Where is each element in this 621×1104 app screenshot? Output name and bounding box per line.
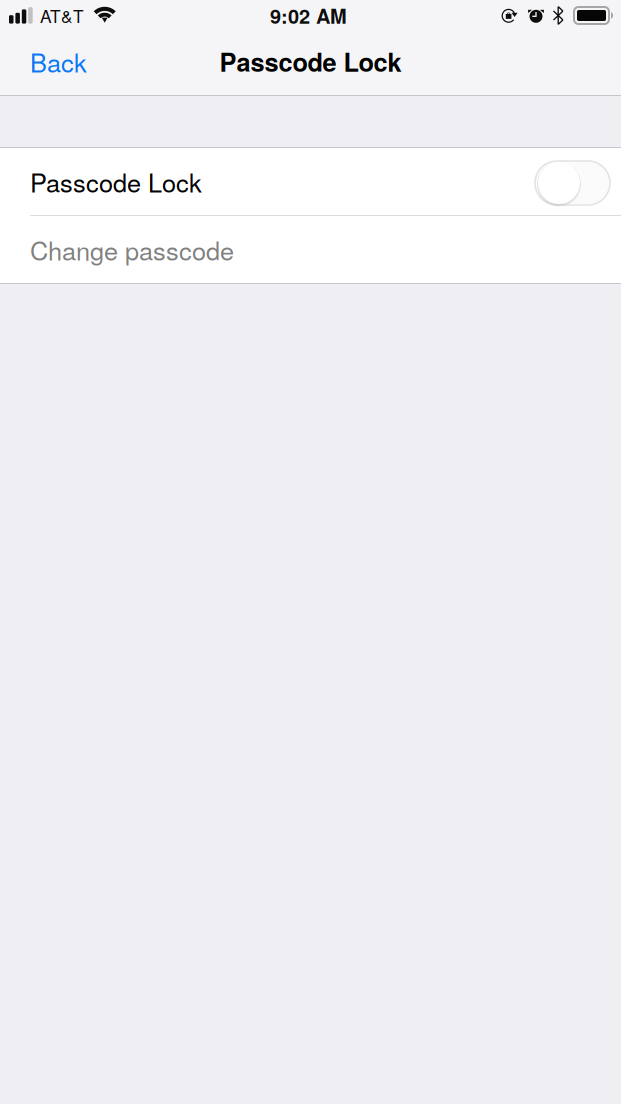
button[interactable]: Passcode Lock (0, 148, 621, 215)
staticText: Change passcode (30, 231, 234, 268)
staticText: 9:02 AM (270, 1, 347, 30)
staticText: Passcode Lock (219, 43, 401, 80)
staticText: Passcode Lock (30, 163, 202, 200)
staticText: AT&T (40, 3, 84, 28)
button[interactable]: Change passcode (0, 216, 621, 283)
staticText: Back (30, 43, 87, 80)
button[interactable]: Back (16, 32, 101, 91)
